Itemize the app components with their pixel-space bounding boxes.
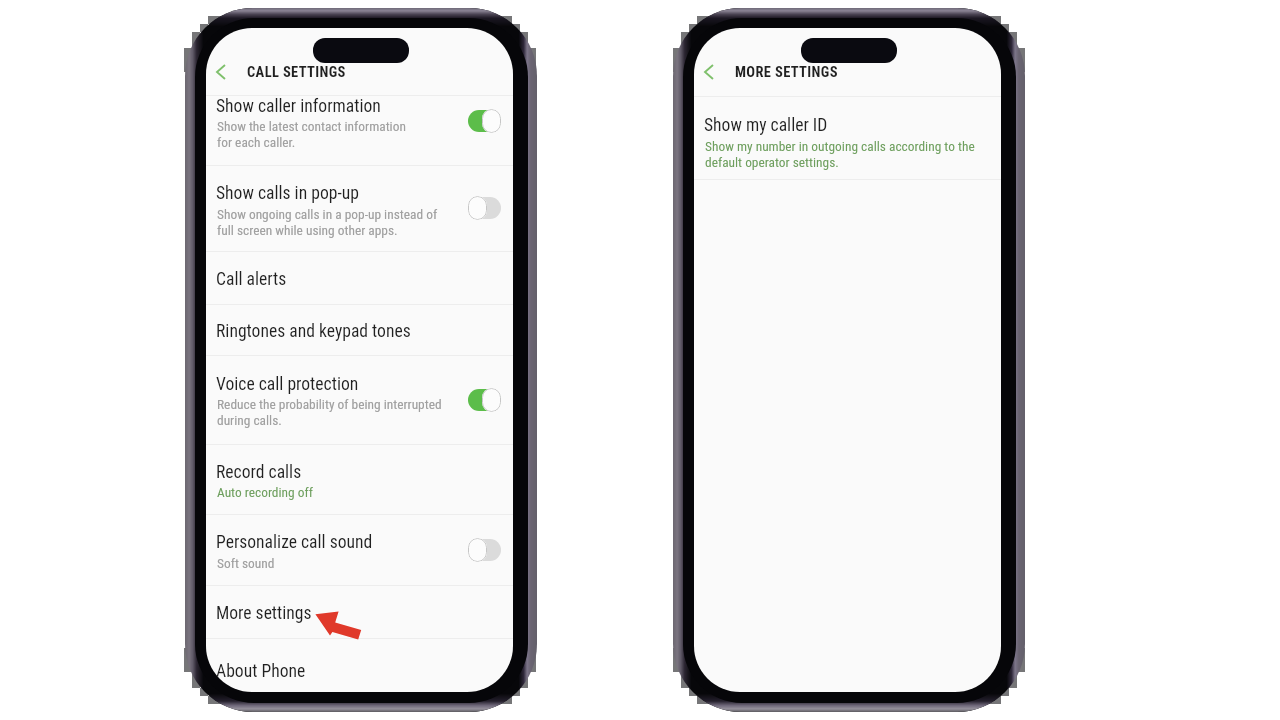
button[interactable]: More settings: [206, 585, 513, 638]
staticText: About Phone: [216, 661, 306, 682]
staticText: Voice call protection: [216, 374, 359, 395]
staticText: Show ongoing calls in a pop-up instead o…: [217, 207, 438, 239]
button[interactable]: Call alerts: [206, 251, 513, 304]
staticText: Ringtones and keypad tones: [216, 321, 411, 342]
staticText: MORE SETTINGS: [735, 64, 838, 81]
staticText: Auto recording off: [217, 485, 313, 501]
staticText: Show caller information: [216, 96, 381, 117]
button[interactable]: Ringtones and keypad tones: [206, 304, 513, 355]
staticText: Record calls: [216, 462, 302, 483]
staticText: More settings: [216, 603, 312, 624]
staticText: CALL SETTINGS: [247, 64, 346, 81]
button[interactable]: Personalize call sound: [206, 514, 513, 586]
button[interactable]: Back: [697, 60, 721, 84]
button[interactable]: Show calls in pop-up: [206, 165, 513, 252]
staticText: Show my number in outgoing calls accordi…: [705, 139, 975, 171]
staticText: Reduce the probability of being interrup…: [217, 397, 442, 429]
button[interactable]: Back: [209, 60, 233, 84]
staticText: Show calls in pop-up: [216, 183, 359, 204]
button[interactable]: Voice call protection: [206, 355, 513, 444]
button[interactable]: About Phone: [206, 638, 513, 692]
button[interactable]: Switch off: [468, 538, 501, 562]
button[interactable]: Show caller information: [206, 95, 513, 165]
button[interactable]: Show my caller ID: [694, 96, 1001, 179]
staticText: Show my caller ID: [704, 115, 828, 136]
staticText: Personalize call sound: [216, 532, 373, 553]
button[interactable]: Switch off: [468, 196, 501, 220]
staticText: Soft sound: [217, 556, 275, 572]
staticText: Show the latest contact information for …: [217, 119, 406, 151]
button[interactable]: Switch on: [468, 388, 501, 412]
staticText: Call alerts: [216, 269, 287, 290]
button[interactable]: Switch on: [468, 109, 501, 133]
button[interactable]: Record calls: [206, 444, 513, 514]
